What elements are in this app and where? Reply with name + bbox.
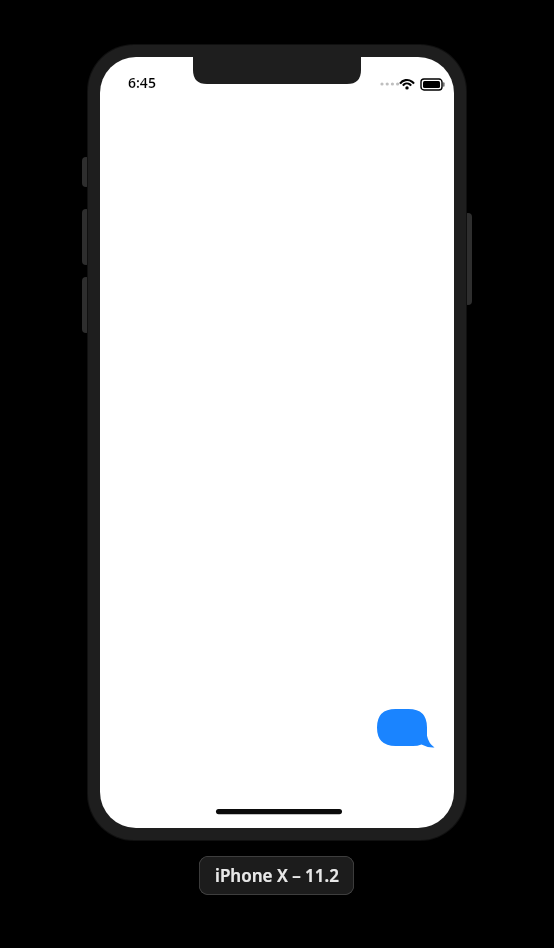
staticText: iPhone X – 11.2	[215, 864, 339, 887]
button[interactable]: iPhone X – 11.2	[199, 856, 354, 895]
staticText: 6:45	[128, 73, 156, 92]
button[interactable]: Message bubble	[375, 707, 437, 748]
